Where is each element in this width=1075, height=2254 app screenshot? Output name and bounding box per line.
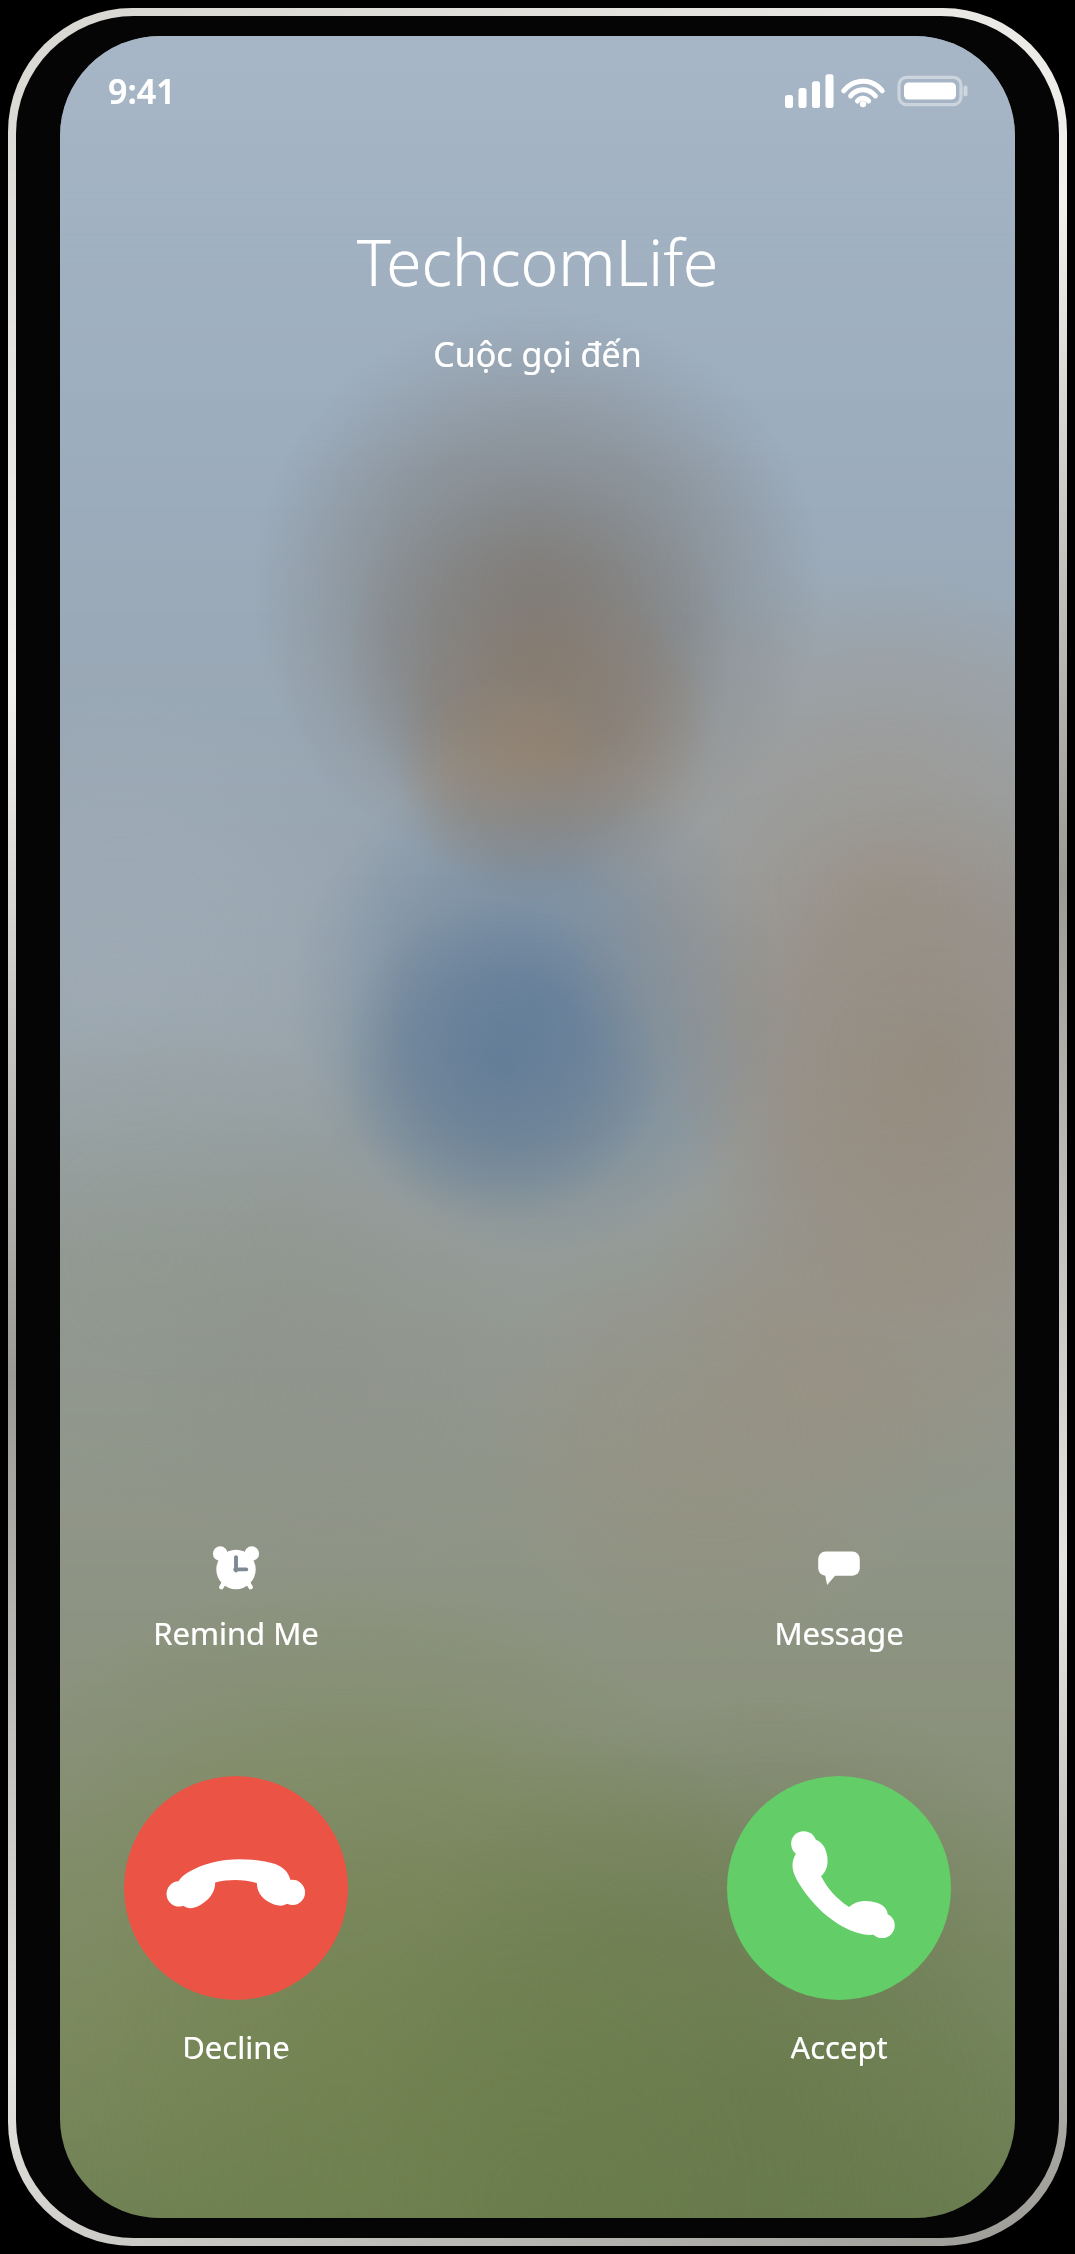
staticText: 9:41 (108, 68, 176, 114)
button[interactable]: Remind Me (116, 1534, 356, 1660)
staticText: Accept (790, 2026, 888, 2068)
staticText: Message (774, 1612, 904, 1654)
button[interactable]: Message (719, 1534, 959, 1660)
other: Decline (124, 1776, 348, 2000)
button[interactable]: Decline (116, 1776, 356, 2068)
other: Accept (727, 1776, 951, 2000)
staticText: Decline (182, 2026, 290, 2068)
staticText: Cuộc gọi đến (60, 331, 1015, 377)
staticText: Remind Me (153, 1612, 319, 1654)
button[interactable]: Accept (719, 1776, 959, 2068)
staticText: TechcomLife (60, 218, 1015, 305)
